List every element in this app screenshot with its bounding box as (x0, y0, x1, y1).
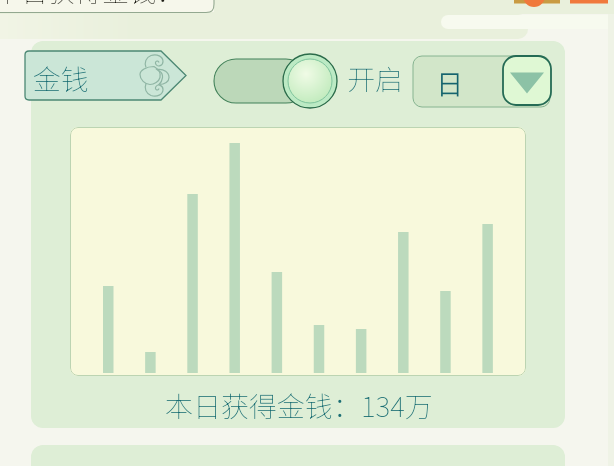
staticText: 本日获得金钱： (0, 0, 183, 10)
staticText: 开启 (347, 58, 404, 99)
staticText: 金钱 (33, 58, 90, 99)
staticText: 日 (436, 63, 463, 102)
button[interactable]: 开启 (345, 57, 405, 99)
button[interactable]: Toggle money chart on (214, 53, 340, 109)
button[interactable]: Change period (503, 56, 551, 105)
button[interactable]: 金钱 (25, 51, 186, 100)
button[interactable]: 日 (413, 56, 550, 107)
staticText: 本日获得金钱：134万 (165, 385, 433, 421)
